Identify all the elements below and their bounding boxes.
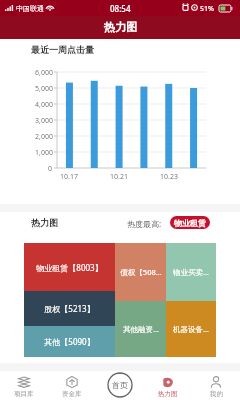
staticText: 物业买卖…	[173, 267, 209, 277]
staticText: 6,000	[35, 68, 53, 78]
staticText: 债权【508…	[120, 267, 162, 277]
staticText: 10.17	[60, 172, 78, 182]
staticText: 3,000	[35, 116, 53, 126]
staticText: 08:54	[110, 3, 131, 14]
staticText: 2,000	[35, 132, 53, 142]
staticText: 热度最高:	[127, 218, 162, 229]
staticText: 中国联通	[16, 4, 44, 13]
staticText: 10.23	[160, 172, 178, 182]
button[interactable]: 股权【5213】	[24, 291, 115, 326]
staticText: 4,000	[35, 100, 53, 110]
button[interactable]: Projects	[0, 371, 48, 400]
staticText: 最近一周点击量	[31, 44, 94, 55]
staticText: 热力图	[158, 390, 178, 398]
staticText: 首页	[112, 380, 128, 390]
staticText: 0	[48, 164, 53, 174]
staticText: 资金库	[62, 390, 82, 398]
button[interactable]: Heat map	[144, 371, 192, 400]
staticText: 机器设备…	[173, 324, 209, 334]
button[interactable]: 债权【508…	[115, 243, 166, 301]
button[interactable]: 机器设备…	[166, 301, 216, 357]
staticText: 股权【5213】	[44, 303, 95, 314]
staticText: 我的	[210, 390, 223, 398]
button[interactable]: Profile	[192, 371, 240, 400]
staticText: 热力图	[31, 217, 58, 228]
staticText: 5,000	[35, 84, 53, 94]
button[interactable]: 物业买卖…	[166, 243, 216, 301]
staticText: 项目库	[14, 390, 34, 398]
button[interactable]: 其他融资…	[115, 301, 166, 357]
button[interactable]: Funds	[48, 371, 96, 400]
staticText: 热力图	[104, 20, 137, 34]
button[interactable]: 物业租赁	[170, 216, 210, 229]
staticText: 其他融资…	[123, 324, 159, 334]
button[interactable]: 物业租赁【8003】	[24, 243, 115, 291]
staticText: 物业租赁	[174, 218, 206, 228]
staticText: 1,000	[35, 148, 53, 158]
staticText: 物业租赁【8003】	[36, 262, 103, 273]
staticText: 51%	[200, 4, 214, 14]
staticText: 其他【5090】	[44, 336, 95, 347]
button[interactable]: Home	[96, 371, 144, 400]
staticText: 10.21	[110, 172, 128, 182]
button[interactable]: 其他【5090】	[24, 326, 115, 357]
